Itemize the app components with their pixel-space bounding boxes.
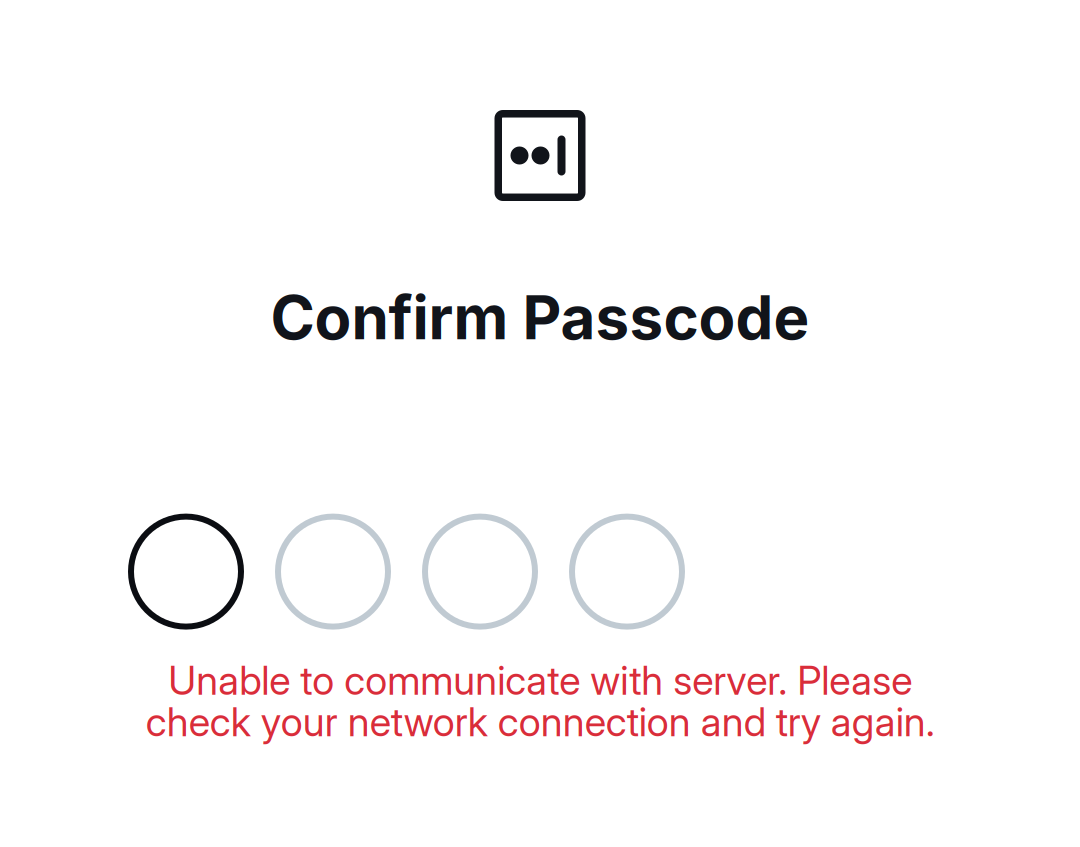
staticText: Confirm Passcode <box>270 281 809 354</box>
staticText: Unable to communicate with server. Pleas… <box>145 657 934 746</box>
button[interactable]: Passcode entry field, 0 of 4 digits ente… <box>128 514 685 630</box>
